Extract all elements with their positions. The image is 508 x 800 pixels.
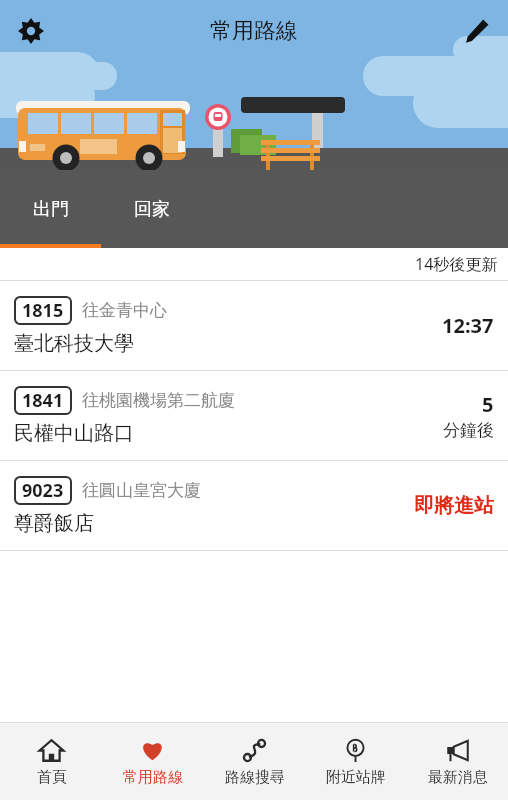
button[interactable]: 首頁 [1,723,102,800]
staticText: 往金青中心 [82,300,167,321]
staticText: 回家 [134,198,170,221]
staticText: 1815 [22,298,64,323]
button[interactable]: 路線搜尋 [204,723,305,800]
button[interactable]: 回家 [101,170,202,248]
button[interactable]: 常用路線 [102,723,203,800]
staticText: 常用路線 [123,768,183,787]
staticText: 9023 [22,478,64,503]
staticText: 附近站牌 [326,768,386,787]
staticText: 最新消息 [428,768,488,787]
button[interactable]: 1841 [0,371,508,461]
staticText: 民權中山路口 [14,421,134,446]
staticText: 路線搜尋 [225,768,285,787]
button[interactable]: 9023 [0,461,508,551]
staticText: 尊爵飯店 [14,511,94,536]
staticText: 往圓山皇宮大廈 [82,480,201,501]
staticText: 首頁 [37,768,67,787]
button[interactable]: Edit [446,0,508,62]
staticText: 往桃園機場第二航廈 [82,390,235,411]
button[interactable]: 最新消息 [407,723,508,800]
button[interactable]: Settings [0,0,62,62]
staticText: 12:37 [442,312,494,339]
staticText: 臺北科技大學 [14,331,134,356]
staticText: 分鐘後 [443,420,494,441]
staticText: 5 [482,391,494,418]
staticText: 1841 [22,388,64,413]
button[interactable]: 附近站牌 [305,723,406,800]
staticText: 14秒後更新 [415,253,498,275]
button[interactable]: 1815 [0,281,508,371]
staticText: 常用路線 [210,17,298,45]
button[interactable]: 出門 [0,170,101,248]
staticText: 即將進站 [414,493,494,518]
staticText: 出門 [33,198,69,221]
